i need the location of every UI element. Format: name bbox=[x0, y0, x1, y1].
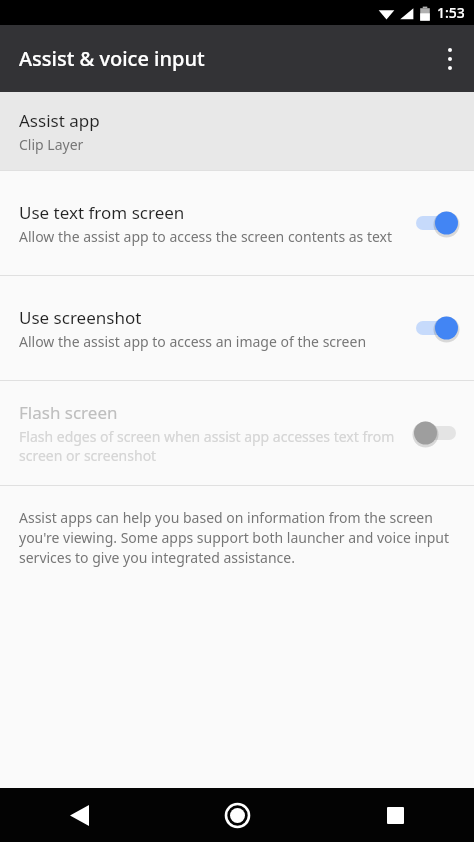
staticText: Assist & voice input bbox=[19, 45, 205, 72]
staticText: Use text from screen bbox=[19, 201, 185, 224]
staticText: 1:53 bbox=[437, 3, 465, 22]
button[interactable]: Assist app bbox=[0, 92, 474, 170]
button[interactable]: More options bbox=[426, 35, 474, 83]
button[interactable]: Use text from screen bbox=[0, 171, 474, 275]
staticText: Use screenshot bbox=[19, 306, 142, 329]
staticText: Assist app bbox=[19, 109, 100, 132]
button[interactable]: Recent apps bbox=[316, 788, 474, 842]
staticText: Assist apps can help you based on inform… bbox=[19, 508, 455, 567]
button[interactable]: Flash screen bbox=[0, 381, 474, 485]
button[interactable]: Toggle bbox=[414, 311, 460, 345]
button[interactable]: Toggle bbox=[414, 416, 460, 450]
staticText: Clip Layer bbox=[19, 135, 84, 154]
staticText: Flash screen bbox=[19, 401, 118, 424]
button[interactable]: Back bbox=[0, 788, 158, 842]
staticText: Allow the assist app to access an image … bbox=[19, 332, 367, 351]
staticText: Allow the assist app to access the scree… bbox=[19, 227, 393, 246]
button[interactable]: Toggle bbox=[414, 206, 460, 240]
button[interactable]: Home bbox=[158, 788, 316, 842]
staticText: Flash edges of screen when assist app ac… bbox=[19, 427, 404, 465]
button[interactable]: Use screenshot bbox=[0, 276, 474, 380]
